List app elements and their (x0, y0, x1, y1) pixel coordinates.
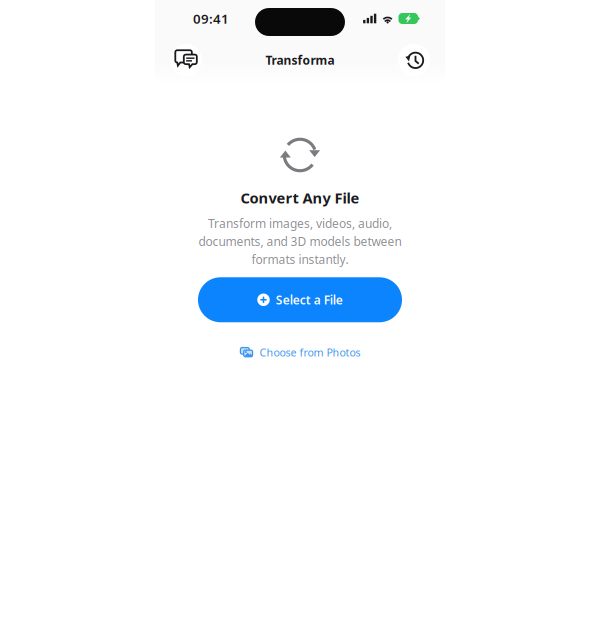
button[interactable]: Select a File (198, 277, 402, 322)
button[interactable]: History (398, 44, 430, 76)
staticText: Transforma (265, 52, 334, 68)
staticText: 09:41 (193, 10, 229, 27)
staticText: documents, and 3D models between (198, 233, 401, 249)
staticText: Choose from Photos (259, 345, 360, 359)
button[interactable]: Messages (170, 44, 202, 76)
staticText: Convert Any File (240, 188, 359, 207)
staticText: Select a File (276, 292, 343, 308)
button[interactable]: Choose from Photos (235, 341, 364, 363)
staticText: Transform images, videos, audio, (208, 215, 392, 231)
staticText: formats instantly. (251, 251, 348, 267)
